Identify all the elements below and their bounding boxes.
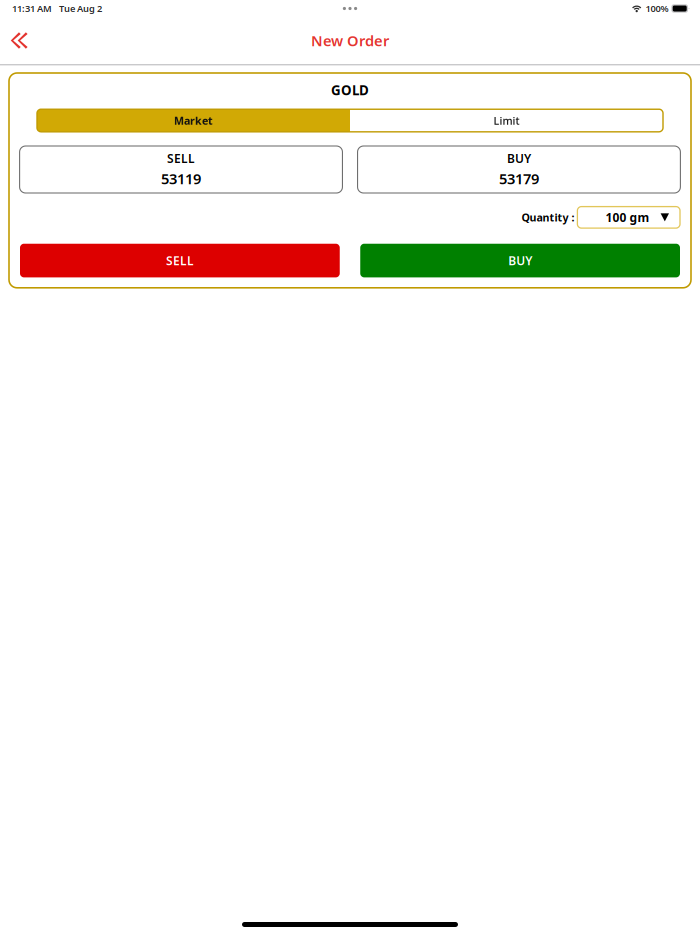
staticText: BUY <box>507 150 531 166</box>
staticText: SELL <box>167 150 195 166</box>
button[interactable]: Limit <box>350 109 663 132</box>
staticText: Limit <box>493 113 519 128</box>
staticText: 11:31 AM <box>12 2 52 15</box>
staticText: 100 gm <box>606 209 650 225</box>
staticText: New Order <box>311 31 389 50</box>
staticText: 53179 <box>499 169 539 188</box>
staticText: Quantity : <box>521 210 574 224</box>
staticText: BUY <box>508 253 532 268</box>
staticText: GOLD <box>331 81 369 99</box>
staticText: Market <box>174 113 213 128</box>
button[interactable]: SELL <box>20 244 340 277</box>
button[interactable]: BUY <box>360 244 680 277</box>
staticText: SELL <box>166 253 194 268</box>
button[interactable]: Market <box>37 109 350 132</box>
staticText: 100% <box>645 2 668 15</box>
button[interactable]: Back <box>0 22 38 58</box>
staticText: 53119 <box>161 169 201 188</box>
button[interactable]: 100 gm <box>577 207 680 228</box>
staticText: Tue Aug 2 <box>59 2 102 15</box>
